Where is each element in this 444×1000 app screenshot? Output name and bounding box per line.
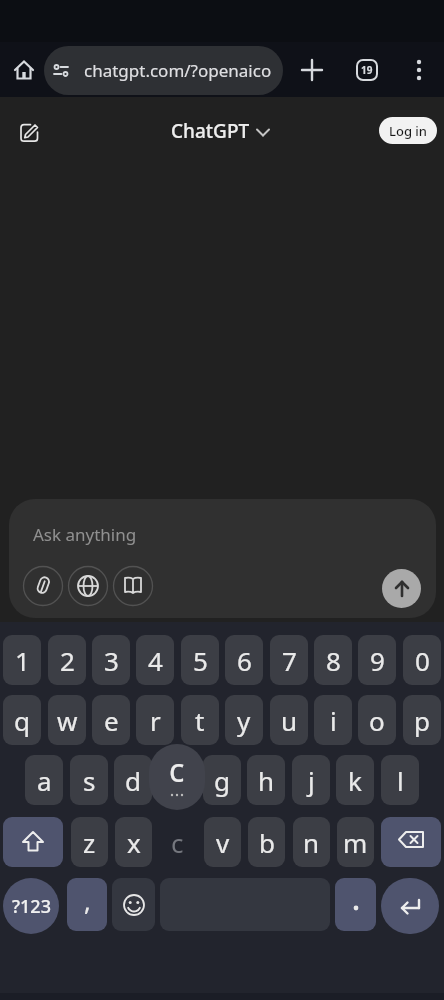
button[interactable]: p [403,695,441,745]
button[interactable]: 0 [403,635,441,685]
button[interactable]: ChatGPT [168,117,252,145]
button[interactable]: l [381,755,419,805]
button[interactable]: o [358,695,396,745]
button[interactable]: k [336,755,374,805]
button[interactable] [112,878,155,931]
button[interactable]: 7 [270,635,308,685]
staticText: w [57,703,78,738]
button[interactable]: 5 [181,635,219,685]
button[interactable]: d [114,755,152,805]
staticText: ChatGPT [171,118,250,144]
staticText: t [195,703,205,738]
button[interactable]: ?123 [3,878,59,934]
button[interactable]: 6 [225,635,263,685]
staticText: g [214,763,230,798]
button[interactable]: r [136,695,174,745]
button[interactable]: y [225,695,263,745]
button[interactable] [381,817,441,867]
staticText: u [281,703,298,738]
button[interactable]: u [270,695,308,745]
button[interactable] [44,46,283,95]
button[interactable]: 19 [356,59,378,81]
button[interactable]: 8 [314,635,352,685]
staticText: s [83,763,96,798]
staticText: Ask anything [33,523,137,546]
button[interactable]: t [181,695,219,745]
button[interactable]: n [293,817,330,867]
button[interactable] [296,54,328,86]
button[interactable]: Log in [379,117,437,144]
staticText: 5 [193,643,208,678]
button[interactable]: 2 [48,635,86,685]
button[interactable]: b [248,817,285,867]
staticText: 2 [60,643,75,678]
staticText: 8 [326,643,341,678]
button[interactable]: e [92,695,130,745]
button[interactable]: s [70,755,108,805]
staticText: x [127,825,141,860]
button[interactable]: m [337,817,374,867]
button[interactable] [3,817,63,867]
button[interactable]: v [204,817,241,867]
button[interactable]: , [67,878,107,931]
button[interactable] [23,566,63,606]
staticText: q [14,703,30,738]
staticText: 3 [104,643,119,678]
button[interactable]: 9 [358,635,396,685]
staticText: m [343,825,368,860]
staticText: 9 [370,643,385,678]
button[interactable]: q [3,695,41,745]
button[interactable]: c [159,817,196,867]
button[interactable] [10,56,38,84]
staticText: p [414,703,430,738]
button[interactable]: g [203,755,241,805]
button[interactable] [381,878,439,934]
staticText: c [171,825,184,860]
staticText: ?123 [12,894,51,919]
staticText: 7 [282,643,297,678]
staticText: 4 [148,643,163,678]
staticText: c [169,748,185,792]
button[interactable]: 3 [92,635,130,685]
staticText: chatgpt.com/?openaico [84,59,272,82]
staticText: z [83,825,96,860]
button[interactable]: i [314,695,352,745]
staticText: v [216,825,230,860]
button[interactable] [68,566,108,606]
staticText: e [104,703,119,738]
button[interactable] [113,566,153,606]
staticText: o [369,703,385,738]
staticText: d [125,763,141,798]
button[interactable]: h [247,755,285,805]
button[interactable] [408,54,430,86]
button[interactable]: x [115,817,152,867]
button[interactable]: j [292,755,330,805]
button[interactable] [9,499,436,618]
staticText: , [84,884,91,918]
staticText: k [348,763,362,798]
button[interactable]: 1 [3,635,41,685]
staticText: a [37,763,52,798]
staticText: 1 [15,643,30,678]
staticText: j [308,763,315,798]
button[interactable]: 4 [136,635,174,685]
staticText: 6 [237,643,252,678]
staticText: r [150,703,161,738]
staticText: 0 [415,643,430,678]
button[interactable] [335,878,376,931]
staticText: b [259,825,275,860]
staticText: l [397,763,404,798]
button[interactable]: z [71,817,108,867]
staticText: i [330,703,337,738]
button[interactable] [382,569,421,608]
staticText: Log in [389,122,427,140]
button[interactable]: a [25,755,63,805]
staticText: h [258,763,275,798]
button[interactable]: c [149,744,205,810]
button[interactable]: w [48,695,86,745]
staticText: n [303,825,320,860]
button[interactable] [14,117,44,147]
staticText: y [237,703,251,738]
staticText: 19 [361,63,373,77]
